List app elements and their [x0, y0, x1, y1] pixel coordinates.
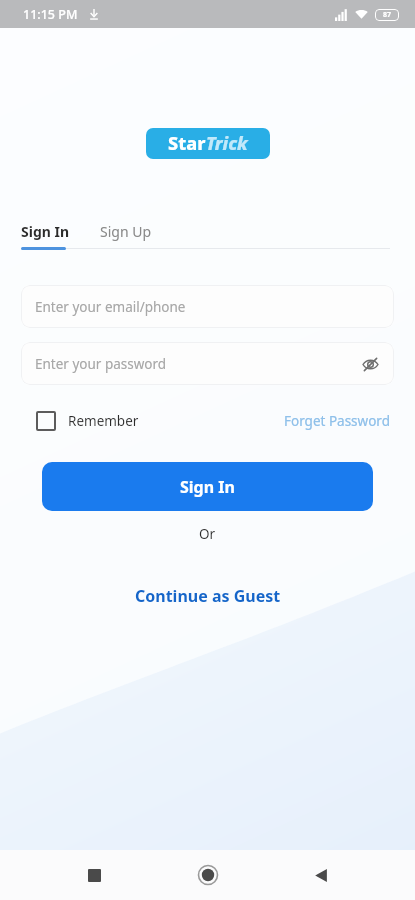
button[interactable]: Sign In [42, 462, 373, 511]
button[interactable]: Sign In [21, 222, 74, 247]
staticText: Enter your email/phone [35, 298, 186, 316]
staticText: Sign In [21, 222, 70, 241]
staticText: Star [168, 131, 206, 156]
staticText: Remember [68, 412, 139, 430]
staticText: Or [199, 525, 216, 543]
button[interactable]: Show password [356, 350, 384, 378]
staticText: Enter your password [35, 355, 167, 373]
staticText: Forget Password [284, 412, 390, 430]
staticText: 87 [383, 10, 392, 20]
button[interactable]: Continue as Guest [119, 579, 297, 613]
button[interactable]: Remember [36, 411, 139, 431]
staticText: Continue as Guest [135, 585, 281, 607]
button[interactable]: Enter your email/phone [21, 285, 394, 328]
staticText: Sign In [180, 476, 235, 498]
staticText: Sign Up [100, 222, 152, 241]
button[interactable]: Forget Password [284, 412, 390, 430]
staticText: 11:15 PM [23, 6, 78, 23]
staticText: Trick [206, 131, 248, 156]
button[interactable]: Enter your password [21, 342, 394, 385]
button[interactable]: Recent apps [74, 855, 114, 895]
button[interactable]: Back [301, 855, 341, 895]
button[interactable]: Home [188, 855, 228, 895]
button[interactable]: Star [146, 128, 270, 159]
button[interactable]: Sign Up [100, 222, 156, 247]
